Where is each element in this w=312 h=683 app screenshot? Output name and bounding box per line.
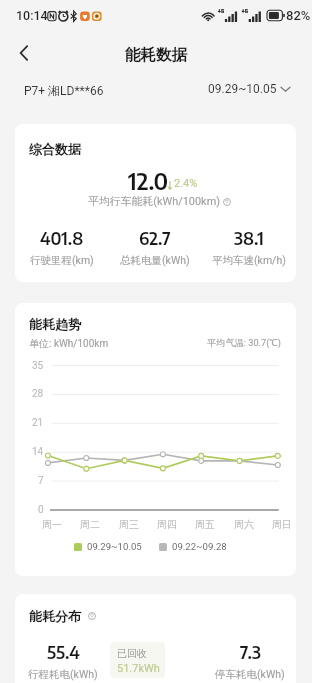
staticText: 2.4% <box>174 177 198 190</box>
staticText: 401.8 <box>40 226 84 248</box>
staticText: 10:14 <box>16 8 48 23</box>
staticText: 周四 <box>157 518 177 531</box>
staticText: 平均行车能耗(kWh/100km) <box>88 195 220 209</box>
staticText: 51.7kWh <box>117 662 160 675</box>
staticText: 能耗分布 <box>29 608 81 624</box>
staticText: 38.1 <box>234 226 264 248</box>
staticText: 总耗电量(kWh) <box>120 254 190 267</box>
staticText: 09.29~10.05 <box>87 541 142 552</box>
staticText: 平均车速(km/h) <box>212 254 286 267</box>
staticText: 周日 <box>272 518 292 531</box>
staticText: 62.7 <box>139 226 171 248</box>
staticText: 行驶里程(km) <box>30 254 94 267</box>
staticText: 35 <box>32 360 44 372</box>
staticText: 能耗趋势 <box>29 316 81 332</box>
staticText: 09.29~10.05 <box>208 82 277 96</box>
staticText: 停车耗电(kWh) <box>215 668 285 681</box>
staticText: 14 <box>32 446 44 458</box>
staticText: P7+ 湘LD***66 <box>24 83 104 98</box>
staticText: 82% <box>286 8 311 23</box>
staticText: 已回收 <box>117 647 147 660</box>
staticText: 能耗数据 <box>125 45 187 65</box>
staticText: 7.3 <box>240 640 261 662</box>
staticText: 周三 <box>119 518 139 531</box>
staticText: 09.22~09.28 <box>172 541 227 552</box>
staticText: 周一 <box>42 518 62 531</box>
staticText: 21 <box>32 417 44 429</box>
staticText: 周二 <box>80 518 100 531</box>
button[interactable]: Back <box>8 36 42 70</box>
staticText: 7 <box>38 475 44 487</box>
staticText: 0 <box>38 504 44 516</box>
staticText: 平均气温: 30.7(℃) <box>207 337 281 349</box>
staticText: 综合数据 <box>29 141 81 157</box>
staticText: 55.4 <box>47 640 80 662</box>
staticText: 28 <box>32 388 44 400</box>
staticText: 周五 <box>195 518 215 531</box>
staticText: 12.0 <box>128 165 169 195</box>
staticText: 行程耗电(kWh) <box>28 668 98 681</box>
staticText: 单位: kWh/100km <box>29 337 109 350</box>
button[interactable]: 09.29~10.05 <box>208 78 290 100</box>
staticText: 周六 <box>234 518 254 531</box>
